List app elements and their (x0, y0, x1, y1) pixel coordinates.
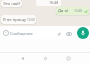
staticText: Да я) (58, 8, 69, 14)
staticText: Сообщение (10, 31, 33, 36)
button[interactable]: Voice message (77, 27, 89, 39)
button[interactable]: Back (17, 53, 27, 63)
staticText: Это чай? (3, 1, 21, 7)
staticText: 10:48 (74, 9, 83, 13)
button[interactable]: Emoji (1, 27, 74, 39)
button[interactable]: Home (40, 53, 50, 63)
other: Emoji (3, 30, 9, 36)
button[interactable]: 10:48 (36, 0, 61, 6)
button[interactable]: Я не прощу (1, 15, 36, 24)
staticText: Я не прощу (3, 17, 27, 23)
button[interactable]: Это чай? (1, 0, 22, 7)
button[interactable]: Attach (55, 30, 62, 37)
button[interactable]: Recents (63, 53, 73, 63)
staticText: 10:50 (27, 18, 35, 22)
button[interactable]: Camera (65, 30, 72, 37)
button[interactable]: Да я) (56, 7, 89, 15)
staticText: 10:48 (49, 0, 59, 5)
